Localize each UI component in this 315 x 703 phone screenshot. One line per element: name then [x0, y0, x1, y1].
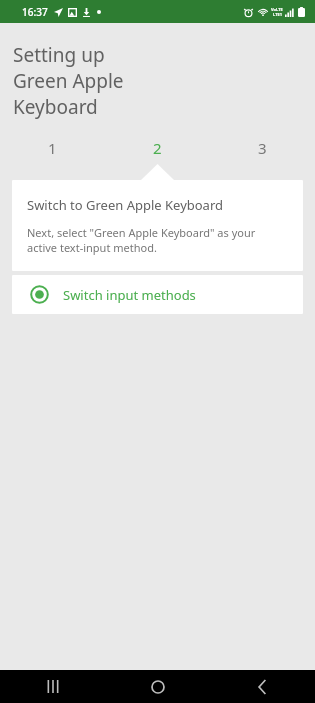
staticText: Next, select "Green Apple Keyboard" as y… — [27, 225, 256, 255]
button[interactable]: Recents — [0, 670, 105, 703]
button[interactable]: 3 — [210, 138, 315, 158]
other: Switch input methods — [30, 285, 49, 304]
button[interactable]: Back — [210, 670, 315, 703]
staticText: Keyboard — [13, 94, 98, 120]
staticText: 3 — [258, 138, 267, 158]
staticText: Switch input methods — [63, 286, 196, 304]
staticText: Green Apple — [13, 68, 124, 94]
staticText: VoLTE — [271, 7, 283, 12]
button[interactable]: 2 — [105, 138, 210, 158]
staticText: 2 — [153, 138, 162, 158]
staticText: LTE1 — [273, 12, 282, 17]
button[interactable]: 1 — [0, 138, 105, 158]
staticText: 1 — [48, 138, 57, 158]
button[interactable]: Switch input methods — [12, 275, 303, 314]
button[interactable]: Home — [105, 670, 210, 703]
staticText: 16:37 — [22, 5, 48, 19]
staticText: Setting up — [13, 42, 105, 68]
staticText: Switch to Green Apple Keyboard — [27, 196, 224, 214]
